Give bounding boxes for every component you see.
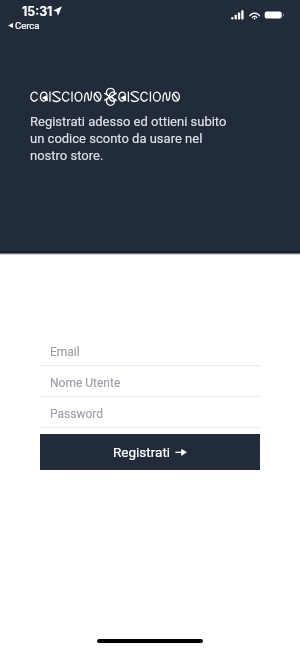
button[interactable]: Registrati — [40, 434, 260, 470]
staticText: Nome Utente — [50, 376, 121, 390]
button[interactable]: Nome Utente — [40, 370, 260, 401]
staticText: Registrati — [113, 444, 171, 460]
staticText: 15:31 — [22, 4, 53, 19]
button[interactable]: Cerca — [8, 20, 40, 31]
button[interactable]: Email — [40, 339, 260, 370]
staticText: Email — [50, 345, 80, 359]
staticText: Cerca — [15, 20, 40, 31]
button[interactable]: Password — [40, 401, 260, 432]
staticText: Registrati adesso ed ottieni subito un c… — [30, 114, 230, 163]
staticText: Password — [50, 407, 104, 421]
